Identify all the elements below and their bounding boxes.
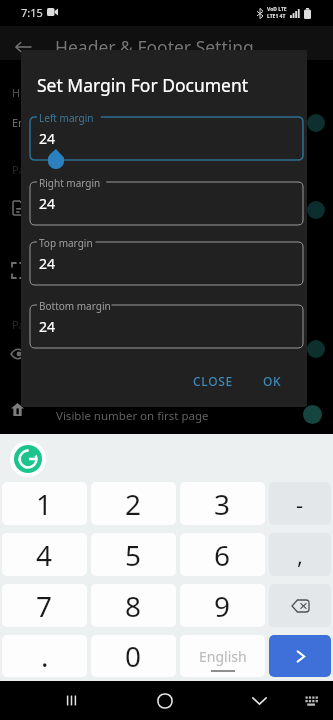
staticText: Header & Footer Setting bbox=[55, 35, 254, 59]
button[interactable]: Bottom margin bbox=[30, 305, 303, 348]
staticText: 2 bbox=[125, 485, 142, 523]
staticText: En bbox=[12, 115, 25, 130]
button[interactable]: Recents bbox=[50, 681, 92, 720]
button[interactable]: 0 bbox=[91, 635, 176, 677]
button[interactable]: Left margin bbox=[30, 117, 303, 160]
staticText: 4 bbox=[36, 536, 53, 574]
staticText: Set Margin For Document bbox=[37, 73, 249, 97]
staticText: CLOSE bbox=[193, 373, 233, 389]
staticText: Pa bbox=[12, 317, 25, 332]
staticText: 1 bbox=[36, 485, 53, 523]
staticText: Right margin bbox=[39, 176, 101, 190]
other: Grammar assistant bbox=[10, 441, 46, 477]
staticText: 7 bbox=[36, 587, 53, 625]
staticText: 24 bbox=[39, 317, 56, 336]
button[interactable]: Top margin bbox=[30, 242, 303, 285]
staticText: 24 bbox=[39, 194, 56, 213]
button[interactable]: English bbox=[180, 635, 265, 677]
button[interactable]: 7 bbox=[2, 584, 87, 627]
staticText: LTE1 4T bbox=[267, 13, 286, 20]
staticText: , bbox=[297, 540, 303, 570]
button[interactable]: CLOSE bbox=[183, 366, 243, 396]
staticText: 8 bbox=[125, 587, 142, 625]
staticText: He bbox=[12, 85, 27, 100]
button[interactable]: OK bbox=[253, 366, 292, 396]
staticText: English bbox=[199, 647, 247, 666]
button[interactable]: Right margin bbox=[30, 182, 303, 225]
other: Enter bbox=[292, 648, 309, 665]
staticText: Left margin bbox=[39, 111, 94, 125]
staticText: Pa bbox=[12, 162, 25, 177]
staticText: Visible number on first page bbox=[56, 408, 209, 424]
button[interactable]: 6 bbox=[180, 533, 265, 576]
staticText: 24 bbox=[39, 129, 56, 148]
other: Back bbox=[15, 41, 31, 53]
button[interactable]: . bbox=[2, 635, 87, 677]
staticText: VoD LTE bbox=[267, 6, 287, 13]
button[interactable]: Hide keyboard bbox=[238, 681, 280, 720]
staticText: 0 bbox=[125, 637, 142, 675]
button[interactable]: 2 bbox=[91, 482, 176, 525]
button[interactable]: Switch keyboard bbox=[291, 681, 333, 720]
button[interactable]: 3 bbox=[180, 482, 265, 525]
staticText: Bottom margin bbox=[39, 299, 111, 313]
staticText: . bbox=[41, 637, 49, 675]
button[interactable]: Home bbox=[144, 681, 186, 720]
button[interactable]: 5 bbox=[91, 533, 176, 576]
button[interactable]: 4 bbox=[2, 533, 87, 576]
staticText: - bbox=[296, 489, 304, 519]
button[interactable]: 1 bbox=[2, 482, 87, 525]
staticText: 7:15 bbox=[21, 5, 43, 20]
staticText: 3 bbox=[214, 485, 231, 523]
button[interactable]: 9 bbox=[180, 584, 265, 627]
staticText: Top margin bbox=[39, 236, 93, 250]
other: Backspace bbox=[291, 599, 310, 613]
button[interactable]: 8 bbox=[91, 584, 176, 627]
staticText: OK bbox=[263, 373, 282, 389]
button[interactable]: , bbox=[269, 533, 331, 576]
staticText: 24 bbox=[39, 254, 56, 273]
staticText: 9 bbox=[214, 587, 231, 625]
staticText: 5 bbox=[125, 536, 142, 574]
button[interactable]: Backspace bbox=[269, 584, 331, 627]
button[interactable]: - bbox=[269, 482, 331, 525]
staticText: 6 bbox=[214, 536, 231, 574]
button[interactable]: Enter bbox=[269, 635, 331, 677]
